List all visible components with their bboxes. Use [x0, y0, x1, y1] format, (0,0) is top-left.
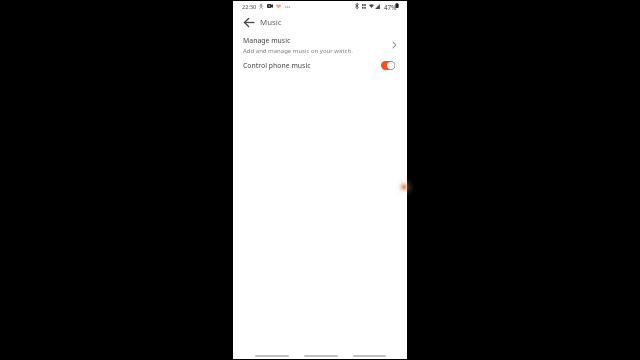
button[interactable]: Back [240, 13, 258, 31]
staticText: 47% [384, 3, 397, 11]
button[interactable]: Control phone music toggle [381, 61, 395, 70]
button[interactable]: Control phone music [233, 57, 407, 74]
staticText: 22:50 [242, 3, 257, 11]
button[interactable]: Back [353, 355, 386, 357]
staticText: Add and manage music on your watch. [243, 47, 353, 55]
staticText: Music [260, 17, 282, 28]
staticText: Manage music [243, 36, 291, 45]
staticText: Control phone music [243, 61, 311, 70]
button[interactable]: Manage music [233, 33, 407, 55]
button[interactable]: Recents [255, 355, 289, 357]
button[interactable]: Home [304, 355, 338, 357]
